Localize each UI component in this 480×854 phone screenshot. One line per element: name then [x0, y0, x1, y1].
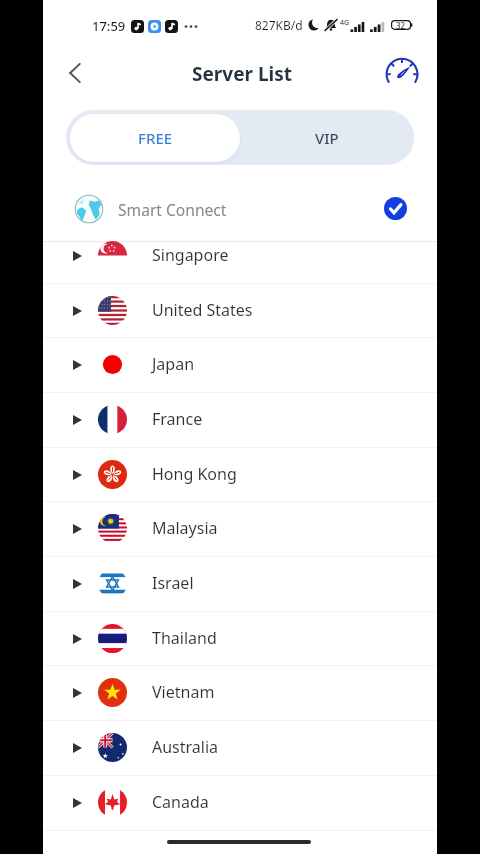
button[interactable]: Vietnam: [43, 665, 437, 720]
staticText: 17:59: [92, 17, 126, 35]
button[interactable]: United States: [43, 283, 437, 338]
staticText: Canada: [152, 791, 209, 813]
staticText: Server List: [192, 61, 293, 87]
staticText: 827KB/d: [255, 17, 303, 33]
button[interactable]: Speed test: [378, 48, 426, 96]
button[interactable]: Back: [51, 49, 99, 97]
staticText: Smart Connect: [118, 199, 227, 220]
staticText: 32: [396, 20, 406, 31]
button[interactable]: Smart Connect: [43, 175, 437, 242]
staticText: 4G: [340, 18, 350, 28]
staticText: France: [152, 408, 203, 430]
staticText: Hong Kong: [152, 463, 237, 485]
staticText: United States: [152, 299, 253, 321]
button[interactable]: Hong Kong: [43, 447, 437, 502]
staticText: Japan: [152, 353, 195, 375]
button[interactable]: Japan: [43, 337, 437, 392]
staticText: Israel: [152, 572, 194, 594]
staticText: FREE: [138, 128, 173, 148]
button[interactable]: VIP: [240, 110, 414, 165]
button[interactable]: FREE: [70, 114, 240, 162]
staticText: Thailand: [152, 627, 217, 649]
button[interactable]: Singapore: [43, 228, 437, 283]
button[interactable]: Israel: [43, 556, 437, 611]
button[interactable]: Malaysia: [43, 501, 437, 556]
staticText: Singapore: [152, 244, 229, 266]
staticText: Australia: [152, 736, 219, 758]
staticText: Vietnam: [152, 681, 215, 703]
button[interactable]: Thailand: [43, 611, 437, 666]
staticText: Malaysia: [152, 517, 218, 539]
staticText: VIP: [315, 128, 339, 148]
button[interactable]: Canada: [43, 775, 437, 830]
button[interactable]: Australia: [43, 720, 437, 775]
button[interactable]: France: [43, 392, 437, 447]
